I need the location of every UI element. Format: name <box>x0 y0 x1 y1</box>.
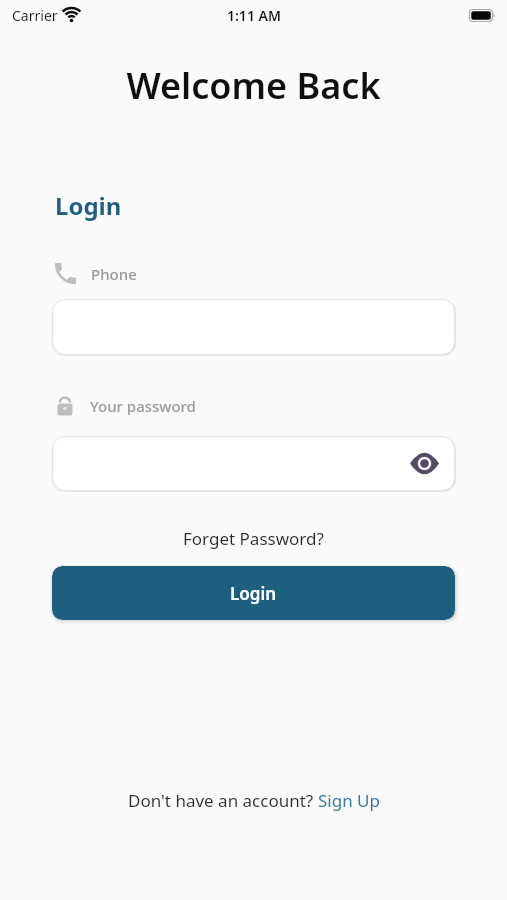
button[interactable]: Forget Password? <box>183 527 324 550</box>
button[interactable]: Login <box>52 566 455 620</box>
button[interactable] <box>410 453 439 474</box>
button[interactable] <box>52 436 455 491</box>
staticText: Your password <box>90 396 196 416</box>
staticText: 1:11 AM <box>227 6 281 25</box>
staticText: Login <box>230 582 277 605</box>
staticText: Phone <box>91 264 137 284</box>
staticText: Welcome Back <box>0 61 507 110</box>
staticText: Carrier <box>12 6 58 25</box>
button[interactable] <box>52 299 455 355</box>
button[interactable]: Sign Up <box>318 789 380 812</box>
staticText: Login <box>55 189 122 222</box>
staticText: Don't have an account? <box>128 789 318 812</box>
